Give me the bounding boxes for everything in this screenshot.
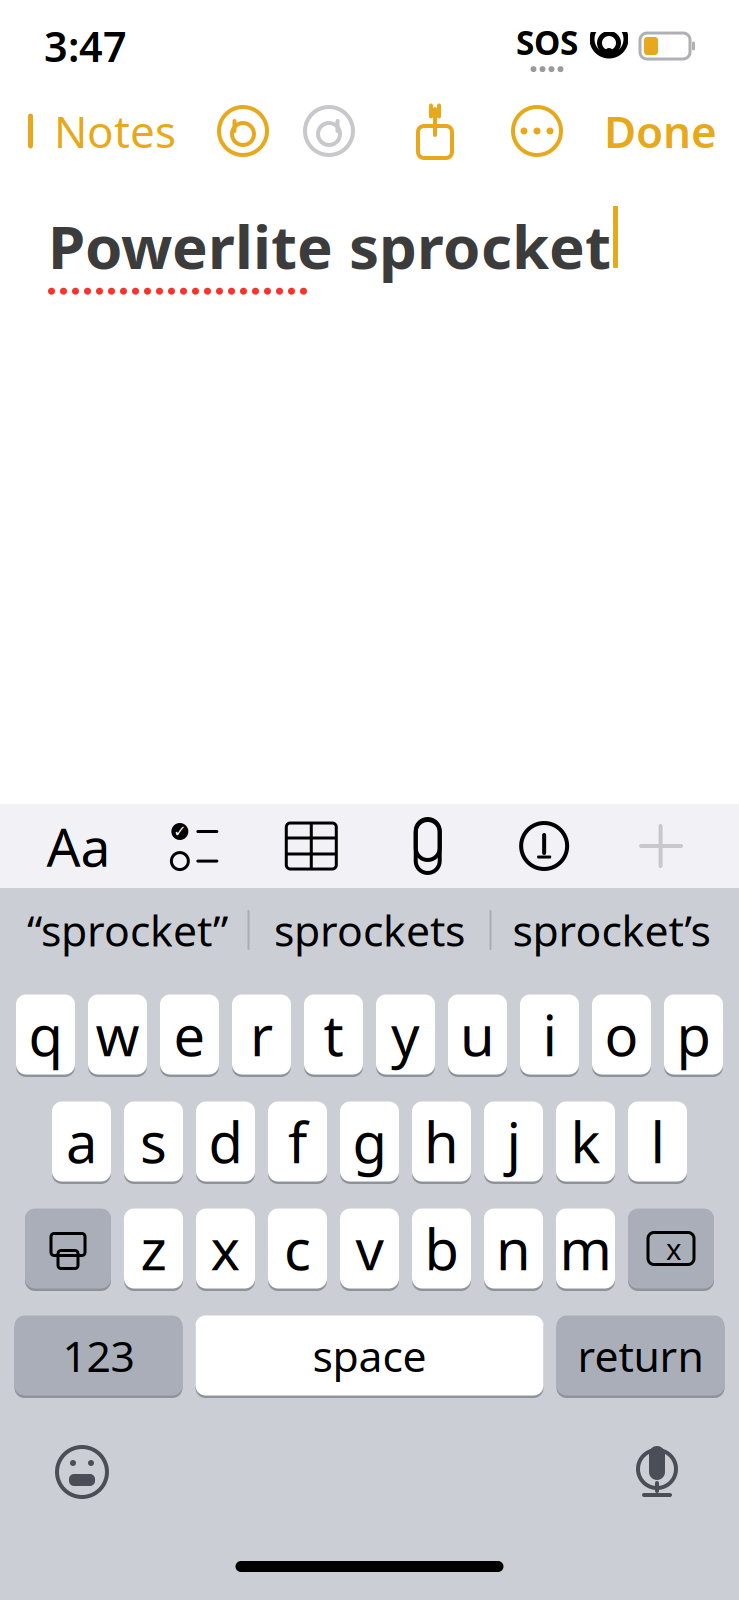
button[interactable]: p [664,992,723,1077]
staticText: v [355,1211,383,1286]
button[interactable]: return [556,1313,724,1398]
staticText: Done [604,102,717,160]
staticText: x [666,1229,682,1268]
button[interactable]: x [196,1206,255,1291]
button[interactable]: “sprocket” [7,888,247,972]
button[interactable]: More [506,100,568,162]
button[interactable]: t [304,992,363,1077]
button[interactable]: sprocket’s [491,888,731,972]
staticText: Aa [46,811,110,881]
staticText: SOS [516,20,578,64]
button[interactable]: Dictation [619,1434,695,1510]
button[interactable]: Undo [212,100,274,162]
button[interactable]: q [16,992,75,1077]
button[interactable]: sprockets [249,888,489,972]
button[interactable]: Delete [628,1206,714,1291]
staticText: n [496,1211,531,1286]
staticText: k [570,1104,600,1179]
staticText: “sprocket” [27,902,228,958]
staticText: 3:47 [44,19,127,73]
staticText: g [352,1104,386,1179]
staticText: o [604,997,638,1072]
staticText: i [542,997,556,1072]
staticText: p [676,997,710,1072]
staticText: s [140,1104,167,1179]
staticText: 123 [62,1327,134,1384]
button[interactable]: Checklist [157,808,233,884]
staticText: Powerlite [48,206,333,286]
staticText: x [210,1211,240,1286]
button[interactable]: Shift [25,1206,111,1291]
button[interactable]: 123 [14,1313,182,1398]
button[interactable]: h [412,1099,471,1184]
staticText: sprockets [274,902,465,958]
button[interactable]: e [160,992,219,1077]
button[interactable]: j [484,1099,543,1184]
staticText: sprocket [333,206,611,286]
staticText: d [208,1104,242,1179]
button[interactable]: o [592,992,651,1077]
button[interactable]: v [340,1206,399,1291]
button[interactable]: z [124,1206,183,1291]
staticText: z [140,1211,166,1286]
button[interactable]: Notes [22,92,176,170]
button[interactable]: n [484,1206,543,1291]
button[interactable]: c [268,1206,327,1291]
button[interactable]: k [556,1099,615,1184]
staticText: sprocket’s [512,902,710,958]
staticText: return [577,1327,703,1384]
staticText: f [288,1104,307,1179]
button[interactable]: space [195,1313,543,1398]
button[interactable]: Share [404,100,466,162]
button[interactable]: Text format [40,808,116,884]
button[interactable]: Redo [298,100,360,162]
button[interactable]: Attach [390,808,466,884]
button[interactable]: r [232,992,291,1077]
staticText: b [424,1211,458,1286]
button[interactable]: m [556,1206,615,1291]
staticText: w [95,997,139,1072]
button[interactable]: w [88,992,147,1077]
button[interactable]: s [124,1099,183,1184]
staticText: y [391,997,420,1072]
button[interactable]: Close keyboard [623,808,699,884]
staticText: e [173,997,205,1072]
staticText: Notes [54,102,176,160]
button[interactable]: d [196,1099,255,1184]
button[interactable]: Markup [506,808,582,884]
staticText: l [650,1104,664,1179]
staticText: c [284,1211,311,1286]
staticText: u [460,997,495,1072]
button[interactable]: b [412,1206,471,1291]
button[interactable]: u [448,992,507,1077]
staticText: h [424,1104,459,1179]
staticText: space [312,1327,426,1384]
staticText: a [66,1104,97,1179]
button[interactable]: f [268,1099,327,1184]
staticText: q [28,997,62,1072]
staticText: ✓ [173,822,186,841]
staticText: r [250,997,273,1072]
button[interactable]: y [376,992,435,1077]
button[interactable]: Done [604,92,717,170]
button[interactable]: Table [273,808,349,884]
button[interactable]: g [340,1099,399,1184]
button[interactable]: i [520,992,579,1077]
staticText: j [506,1104,520,1179]
button[interactable]: l [628,1099,687,1184]
button[interactable]: a [52,1099,111,1184]
staticText: t [323,997,343,1072]
staticText: m [559,1211,611,1286]
button[interactable]: Emoji [44,1434,120,1510]
